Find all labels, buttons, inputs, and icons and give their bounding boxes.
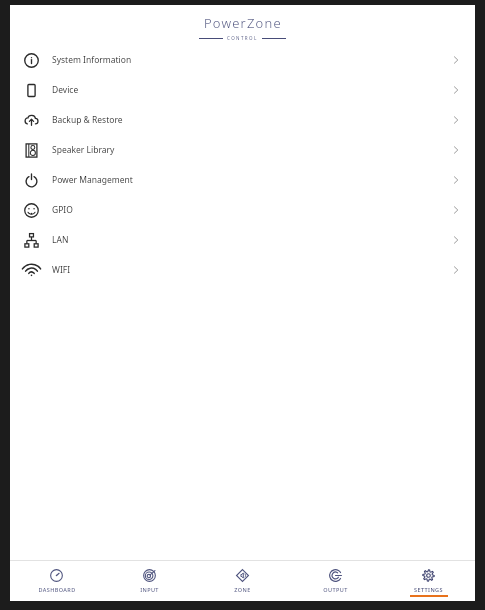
staticText: LAN [52,234,69,246]
staticText: INPUT [140,586,159,593]
button[interactable]: System Information [10,45,475,75]
button[interactable]: Backup & Restore [10,105,475,135]
button[interactable]: ZONE [196,561,289,601]
staticText: PowerZone [204,14,282,32]
staticText: GPIO [52,204,73,216]
button[interactable]: Power Management [10,165,475,195]
staticText: Device [52,84,79,96]
button[interactable]: OUTPUT [289,561,382,601]
button[interactable]: DASHBOARD [10,561,103,601]
staticText: System Information [52,54,132,66]
button[interactable]: LAN [10,225,475,255]
staticText: ZONE [234,586,251,593]
staticText: Speaker Library [52,144,115,156]
button[interactable]: INPUT [103,561,196,601]
button[interactable]: WIFI [10,255,475,285]
button[interactable]: SETTINGS [382,561,475,601]
button[interactable]: Speaker Library [10,135,475,165]
staticText: Backup & Restore [52,114,123,126]
staticText: CONTROL [227,35,258,41]
staticText: Power Management [52,174,133,186]
button[interactable]: Device [10,75,475,105]
staticText: DASHBOARD [38,586,76,593]
staticText: SETTINGS [414,586,443,593]
button[interactable]: GPIO [10,195,475,225]
staticText: OUTPUT [323,586,348,593]
staticText: WIFI [52,264,71,276]
